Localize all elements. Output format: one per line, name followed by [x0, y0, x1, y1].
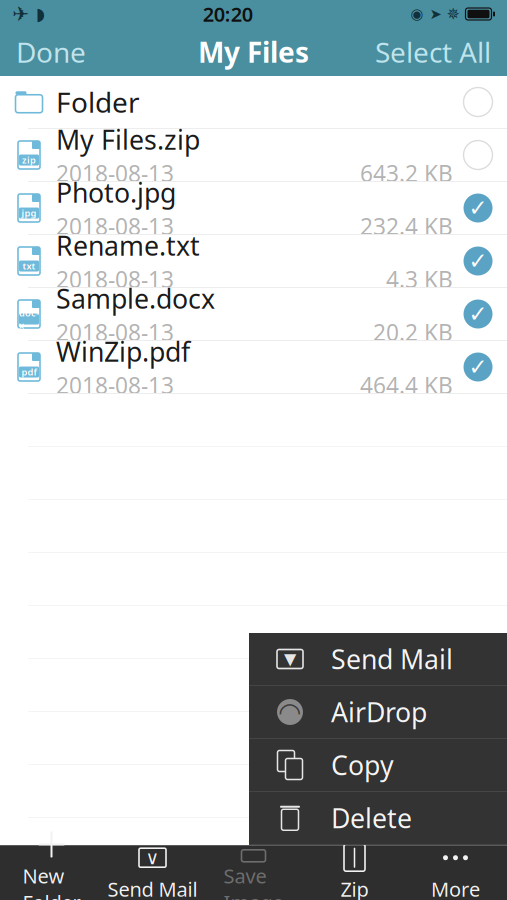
- staticText: docx: [19, 307, 39, 331]
- staticText: txt: [22, 260, 35, 272]
- staticText: 2018-08-13: [56, 211, 174, 241]
- staticText: 2018-08-13: [56, 317, 174, 347]
- staticText: pdf: [21, 366, 36, 378]
- staticText: My Files: [198, 33, 309, 71]
- staticText: WinZip.pdf: [56, 334, 190, 369]
- staticText: ◠: [279, 697, 300, 727]
- button[interactable]: ▼: [249, 633, 507, 686]
- staticText: Save Image: [223, 862, 283, 900]
- staticText: 20:20: [203, 1, 253, 27]
- staticText: ▼: [284, 650, 296, 668]
- button[interactable]: zip: [0, 129, 507, 182]
- staticText: Delete: [331, 800, 412, 836]
- staticText: My Files.zip: [56, 122, 200, 157]
- staticText: 2018-08-13: [56, 158, 174, 188]
- staticText: More: [431, 876, 480, 900]
- staticText: 20.2 KB: [373, 317, 453, 347]
- button[interactable]: jpg: [0, 182, 507, 235]
- button[interactable]: pdf: [0, 341, 507, 394]
- button[interactable]: Copy: [249, 739, 507, 792]
- staticText: Rename.txt: [56, 228, 200, 263]
- staticText: ✓: [468, 301, 487, 327]
- button[interactable]: ∨: [102, 846, 203, 900]
- staticText: ◗: [36, 4, 45, 24]
- staticText: jpg: [21, 207, 36, 219]
- staticText: Send Mail: [331, 641, 453, 677]
- button[interactable]: Zip: [304, 846, 405, 900]
- staticText: AirDrop: [331, 694, 427, 730]
- staticText: 2018-08-13: [56, 370, 174, 400]
- staticText: New Folder: [22, 862, 80, 900]
- staticText: Copy: [331, 747, 394, 783]
- staticText: Zip: [340, 876, 368, 900]
- staticText: 2018-08-13: [56, 264, 174, 294]
- button[interactable]: ◠: [249, 686, 507, 739]
- staticText: ✵: [446, 5, 459, 23]
- button[interactable]: Select All: [359, 28, 507, 76]
- staticText: Photo.jpg: [56, 175, 176, 210]
- staticText: 464.4 KB: [360, 370, 453, 400]
- staticText: Sample.docx: [56, 281, 215, 316]
- staticText: 4.3 KB: [386, 264, 453, 294]
- button[interactable]: docx: [0, 288, 507, 341]
- button[interactable]: More: [405, 846, 506, 900]
- staticText: zip: [22, 154, 36, 166]
- staticText: Folder: [56, 83, 140, 121]
- button[interactable]: Done: [0, 28, 102, 76]
- staticText: Done: [16, 33, 86, 71]
- staticText: ✓: [468, 195, 487, 221]
- staticText: ✈: [12, 3, 29, 25]
- staticText: ◉: [410, 6, 423, 22]
- staticText: ∨: [145, 847, 159, 868]
- staticText: Send Mail: [107, 876, 197, 900]
- staticText: ↓: [245, 827, 262, 850]
- button[interactable]: ↓: [203, 846, 304, 900]
- button[interactable]: Folder: [0, 76, 507, 129]
- staticText: ✓: [468, 354, 487, 380]
- staticText: ✓: [468, 248, 487, 274]
- button[interactable]: Delete: [249, 792, 507, 845]
- staticText: ➤: [429, 6, 441, 22]
- staticText: Select All: [375, 33, 491, 71]
- staticText: 643.2 KB: [360, 158, 453, 188]
- button[interactable]: txt: [0, 235, 507, 288]
- staticText: 232.4 KB: [360, 211, 453, 241]
- button[interactable]: New Folder: [1, 846, 102, 900]
